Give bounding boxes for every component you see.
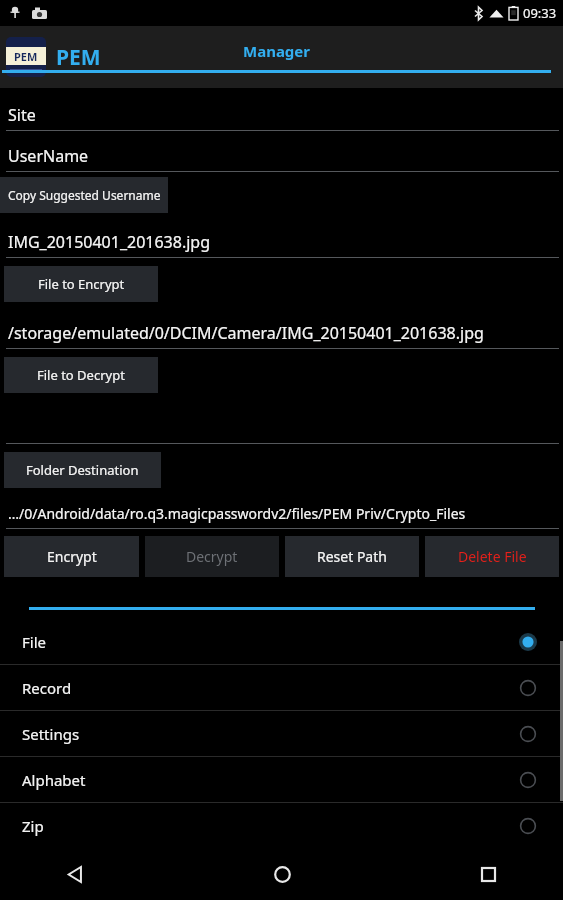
- button[interactable]: Manager: [0, 41, 553, 73]
- button[interactable]: Recent apps: [461, 848, 515, 900]
- staticText: Settings: [22, 724, 80, 744]
- button[interactable]: Delete File: [425, 536, 559, 577]
- staticText: Zip: [22, 816, 44, 836]
- button[interactable]: [0, 413, 563, 444]
- staticText: Folder Destination: [26, 461, 139, 479]
- button[interactable]: Back: [48, 848, 102, 900]
- staticText: Decrypt: [186, 547, 238, 566]
- button[interactable]: Folder Destination: [4, 452, 161, 488]
- button[interactable]: IMG_20150401_201638.jpg: [0, 227, 563, 258]
- staticText: File: [22, 632, 46, 652]
- button[interactable]: PEM: [6, 37, 101, 77]
- button[interactable]: Record: [0, 665, 563, 710]
- button[interactable]: …/0/Android/data/ro.q3.magicpasswordv2/f…: [0, 498, 563, 529]
- staticText: Alphabet: [22, 770, 86, 790]
- staticText: PEM: [56, 43, 101, 72]
- button[interactable]: Settings: [0, 711, 563, 756]
- staticText: Reset Path: [317, 547, 387, 566]
- button[interactable]: Home: [255, 848, 309, 900]
- button[interactable]: File to Encrypt: [4, 266, 158, 302]
- button[interactable]: Site: [0, 100, 563, 131]
- button[interactable]: Alphabet: [0, 757, 563, 802]
- staticText: File to Encrypt: [38, 275, 125, 293]
- button[interactable]: Encrypt: [4, 536, 139, 577]
- staticText: Copy Suggested Username: [8, 187, 161, 203]
- button[interactable]: UserName: [0, 141, 563, 172]
- staticText: /storage/emulated/0/DCIM/Camera/IMG_2015…: [8, 322, 484, 344]
- staticText: File to Decrypt: [37, 366, 125, 384]
- button[interactable]: File: [0, 619, 563, 664]
- button[interactable]: /storage/emulated/0/DCIM/Camera/IMG_2015…: [0, 318, 563, 349]
- staticText: IMG_20150401_201638.jpg: [8, 231, 211, 253]
- staticText: …/0/Android/data/ro.q3.magicpasswordv2/f…: [8, 504, 466, 523]
- button[interactable]: Reset Path: [285, 536, 419, 577]
- staticText: PEM: [14, 49, 38, 64]
- button[interactable]: Decrypt: [145, 536, 279, 577]
- staticText: UserName: [8, 145, 89, 167]
- button[interactable]: File to Decrypt: [4, 357, 158, 393]
- button[interactable]: Copy Suggested Username: [0, 177, 168, 213]
- staticText: Encrypt: [47, 547, 97, 566]
- button[interactable]: Zip: [0, 803, 563, 848]
- staticText: Record: [22, 678, 72, 698]
- staticText: Site: [8, 104, 36, 126]
- staticText: 09:33: [523, 4, 557, 22]
- staticText: Manager: [243, 41, 311, 61]
- staticText: Delete File: [458, 547, 527, 566]
